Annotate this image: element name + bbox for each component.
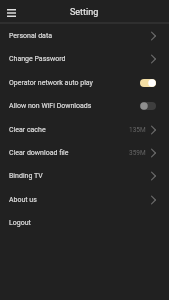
button[interactable]: Change Password bbox=[0, 47, 169, 71]
button[interactable]: Logout bbox=[0, 211, 169, 235]
button[interactable]: Operator network auto play bbox=[0, 71, 169, 94]
button[interactable]: Menu bbox=[0, 1, 22, 24]
staticText: Binding TV bbox=[9, 172, 43, 180]
button[interactable]: Allow non WiFi Downloads bbox=[0, 94, 169, 118]
button[interactable]: About us bbox=[0, 188, 169, 211]
staticText: Change Password bbox=[9, 55, 66, 63]
staticText: Allow non WiFi Downloads bbox=[9, 102, 92, 110]
button[interactable]: Clear cache bbox=[0, 118, 169, 141]
button[interactable]: Switch off bbox=[140, 102, 156, 110]
staticText: Operator network auto play bbox=[9, 79, 93, 87]
button[interactable]: Binding TV bbox=[0, 164, 169, 188]
staticText: Setting bbox=[70, 7, 99, 18]
staticText: About us bbox=[9, 196, 37, 204]
staticText: Clear cache bbox=[9, 126, 46, 134]
button[interactable]: Switch on bbox=[140, 79, 156, 87]
staticText: 359M bbox=[129, 149, 146, 157]
button[interactable]: Personal data bbox=[0, 24, 169, 47]
staticText: Personal data bbox=[9, 32, 53, 40]
staticText: Logout bbox=[9, 219, 31, 227]
staticText: 135M bbox=[129, 126, 146, 134]
button[interactable]: Clear download file bbox=[0, 141, 169, 164]
staticText: Clear download file bbox=[9, 149, 69, 157]
